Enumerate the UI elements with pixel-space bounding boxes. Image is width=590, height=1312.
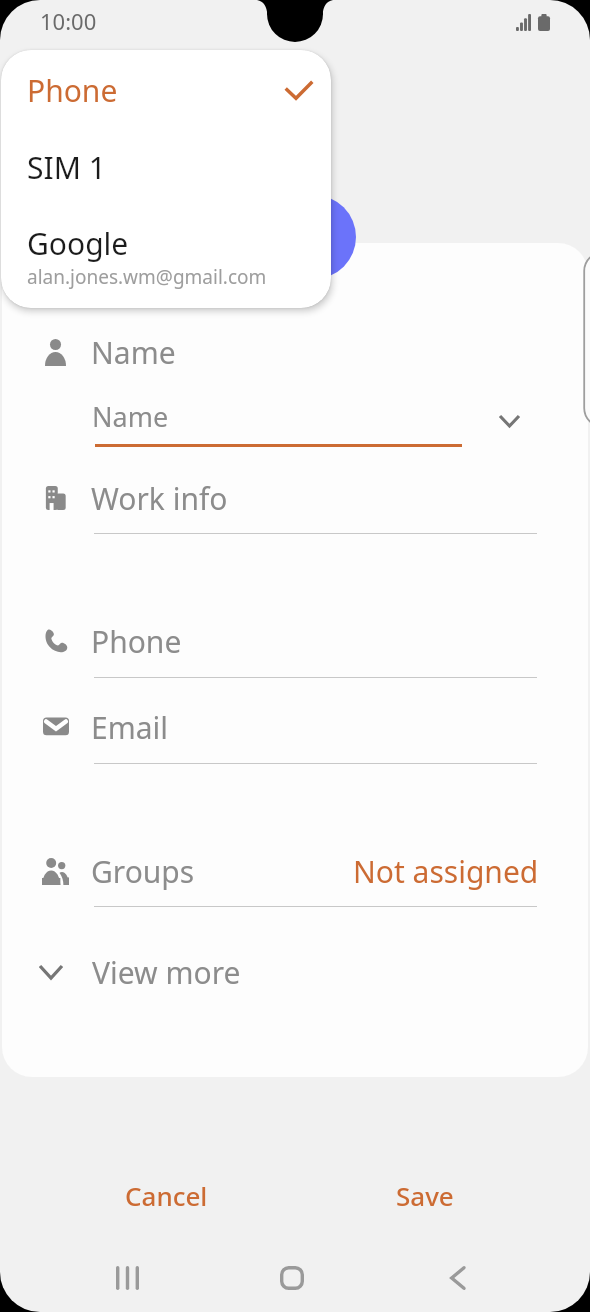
button[interactable]: Work info — [2, 467, 588, 529]
staticText: Work info — [91, 478, 228, 519]
staticText: Save — [396, 1178, 454, 1213]
staticText: Cancel — [125, 1178, 208, 1213]
button[interactable]: Google — [1, 216, 331, 302]
staticText: alan.jones.wm@gmail.com — [27, 264, 267, 290]
staticText: Not assigned — [353, 851, 539, 892]
button[interactable]: View more — [2, 941, 588, 1003]
button[interactable]: Cancel — [86, 1164, 247, 1226]
staticText: SIM 1 — [27, 147, 106, 188]
staticText: Phone — [27, 70, 118, 111]
staticText: Google — [27, 223, 129, 264]
button[interactable]: Groups — [2, 840, 588, 902]
button[interactable]: Save — [344, 1164, 505, 1226]
button[interactable]: SIM 1 — [1, 137, 331, 197]
staticText: Email — [91, 707, 169, 748]
staticText: View more — [92, 952, 241, 993]
button[interactable]: Home — [257, 1243, 327, 1312]
button[interactable]: Name — [2, 321, 588, 383]
staticText: Phone — [91, 621, 182, 662]
staticText: Name — [91, 332, 176, 373]
staticText: 10:00 — [40, 6, 97, 36]
button[interactable]: Email — [2, 696, 588, 758]
button[interactable]: Recent apps — [92, 1243, 162, 1312]
button[interactable]: Expand name field — [482, 394, 536, 448]
button[interactable]: Back — [422, 1243, 492, 1312]
staticText: Name — [92, 398, 169, 435]
button[interactable]: Phone — [2, 610, 588, 672]
staticText: Groups — [91, 851, 195, 892]
button[interactable]: Phone — [1, 60, 331, 120]
